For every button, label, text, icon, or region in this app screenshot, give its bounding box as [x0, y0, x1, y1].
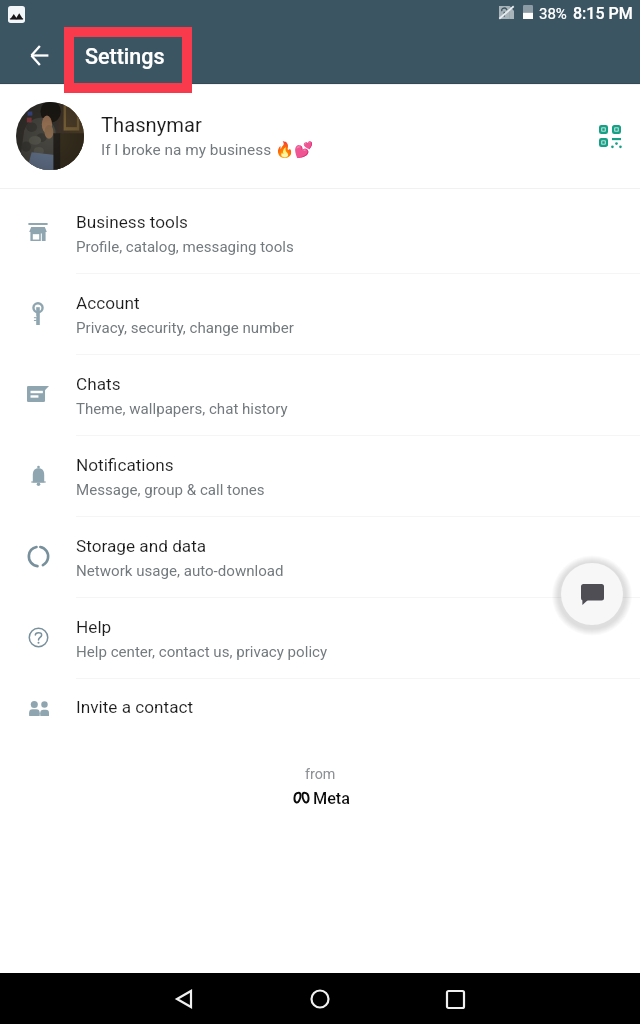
staticText: Meta — [313, 789, 350, 808]
button[interactable]: QR code — [592, 118, 628, 154]
staticText: Business tools — [76, 212, 188, 232]
staticText: Account — [76, 293, 140, 313]
button[interactable] — [0, 432, 640, 513]
button[interactable]: Open chat — [561, 563, 623, 625]
button[interactable] — [0, 189, 640, 270]
button[interactable]: Back — [160, 975, 208, 1023]
staticText: Theme, wallpapers, chat history — [76, 400, 288, 418]
button[interactable] — [0, 270, 640, 351]
button[interactable] — [0, 513, 640, 594]
staticText: Help — [76, 617, 112, 637]
button[interactable] — [0, 594, 640, 675]
staticText: Network usage, auto-download — [76, 562, 284, 580]
staticText: Notifications — [76, 455, 174, 475]
button[interactable]: Home — [296, 975, 344, 1023]
staticText: Privacy, security, change number — [76, 319, 294, 337]
staticText: Thasnymar — [101, 113, 202, 137]
staticText: Chats — [76, 374, 121, 394]
staticText: Message, group & call tones — [76, 481, 265, 499]
staticText: 8:15 PM — [573, 4, 633, 23]
staticText: 38% — [539, 5, 567, 23]
staticText: Settings — [85, 44, 165, 69]
staticText: from — [305, 766, 336, 783]
staticText: Help center, contact us, privacy policy — [76, 643, 328, 661]
staticText: Storage and data — [76, 536, 207, 556]
button[interactable] — [0, 351, 640, 432]
button[interactable]: Navigate back — [15, 31, 63, 79]
staticText: Invite a contact — [76, 697, 194, 717]
staticText: If I broke na my business 🔥💕 — [101, 141, 314, 159]
staticText: Profile, catalog, messaging tools — [76, 238, 294, 256]
button[interactable] — [0, 85, 640, 188]
button[interactable]: Recent apps — [431, 975, 479, 1023]
button[interactable] — [0, 675, 640, 741]
